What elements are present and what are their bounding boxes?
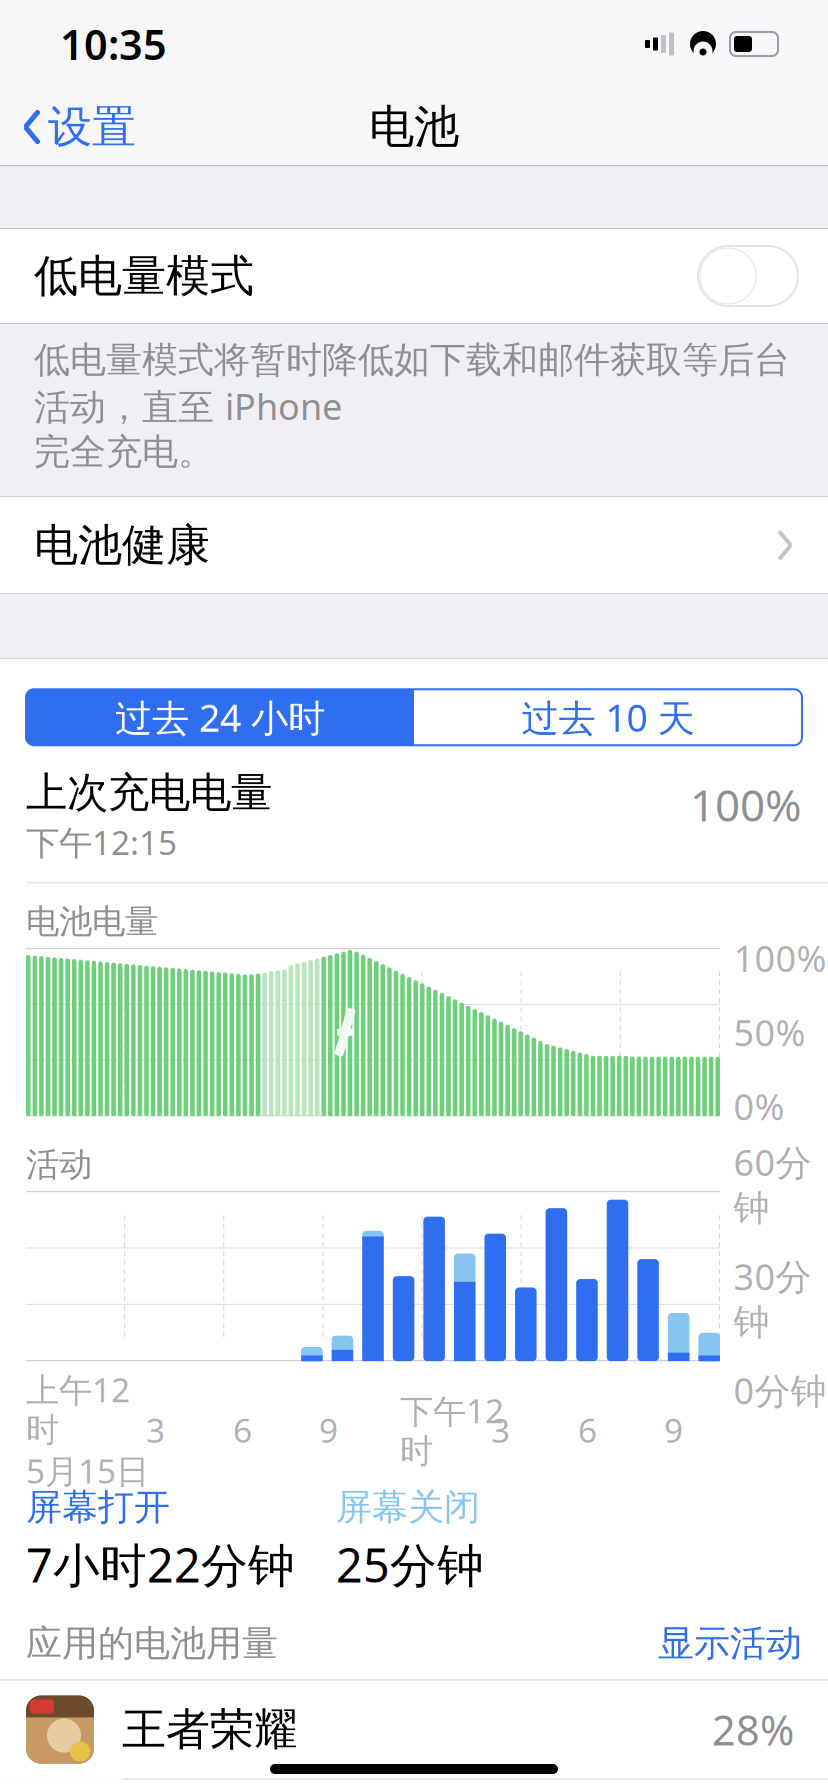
staticText: 设置 [48, 100, 136, 154]
staticText: 屏幕关闭 [336, 1485, 480, 1529]
staticText: 50% [733, 1008, 805, 1056]
staticText: 0分钟 [733, 1366, 826, 1414]
staticText: 100% [690, 775, 802, 834]
staticText: 屏幕打开 [26, 1485, 170, 1529]
staticText: 低电量模式 [34, 249, 254, 303]
staticText: 上午12 [26, 1367, 130, 1411]
staticText: 30分钟 [733, 1252, 811, 1344]
staticText: 完全充电。 [34, 430, 214, 474]
staticText: 过去 10 天 [521, 692, 694, 742]
button[interactable]: 电池健康 [0, 497, 828, 593]
staticText: 9 [319, 1408, 338, 1452]
staticText: 3 [146, 1408, 165, 1452]
staticText: 6 [578, 1408, 597, 1452]
staticText: 10:35 [60, 17, 167, 71]
staticText: 28% [712, 1702, 794, 1757]
button[interactable]: 过去 10 天 [414, 689, 802, 745]
staticText: 上次充电电量 [26, 767, 272, 818]
button[interactable]: 过去 24 小时 [26, 689, 414, 745]
staticText: 应用的电池用量 [26, 1621, 278, 1665]
staticText: 下午12:15 [26, 820, 177, 864]
staticText: 时 [26, 1409, 59, 1450]
staticText: 低电量模式将暂时降低如下载和邮件获取等后台活动，直至 iPhone [34, 338, 790, 430]
staticText: 活动 [26, 1144, 92, 1185]
button[interactable]: 显示活动 [658, 1621, 802, 1665]
staticText: 时 [400, 1431, 433, 1471]
button[interactable]: 王者荣耀 [0, 1681, 828, 1779]
staticText: 电池 [369, 99, 459, 155]
staticText: 3 [491, 1408, 510, 1452]
button[interactable]: 低电量模式 [0, 229, 828, 323]
staticText: 100% [733, 934, 826, 982]
staticText: 0% [733, 1082, 784, 1130]
staticText: 6 [233, 1408, 252, 1452]
staticText: 7小时22分钟 [26, 1533, 295, 1595]
staticText: 25分钟 [336, 1533, 484, 1595]
staticText: 电池电量 [26, 901, 158, 942]
staticText: 过去 24 小时 [115, 692, 325, 742]
staticText: 9 [664, 1408, 683, 1452]
staticText: 王者荣耀 [122, 1702, 298, 1756]
staticText: 电池健康 [34, 518, 210, 572]
button[interactable]: 设置 [22, 92, 146, 162]
staticText: 显示活动 [658, 1621, 802, 1665]
staticText: 下午12 [400, 1388, 504, 1433]
staticText: 5月15日 [26, 1448, 149, 1493]
staticText: 60分钟 [733, 1138, 811, 1230]
